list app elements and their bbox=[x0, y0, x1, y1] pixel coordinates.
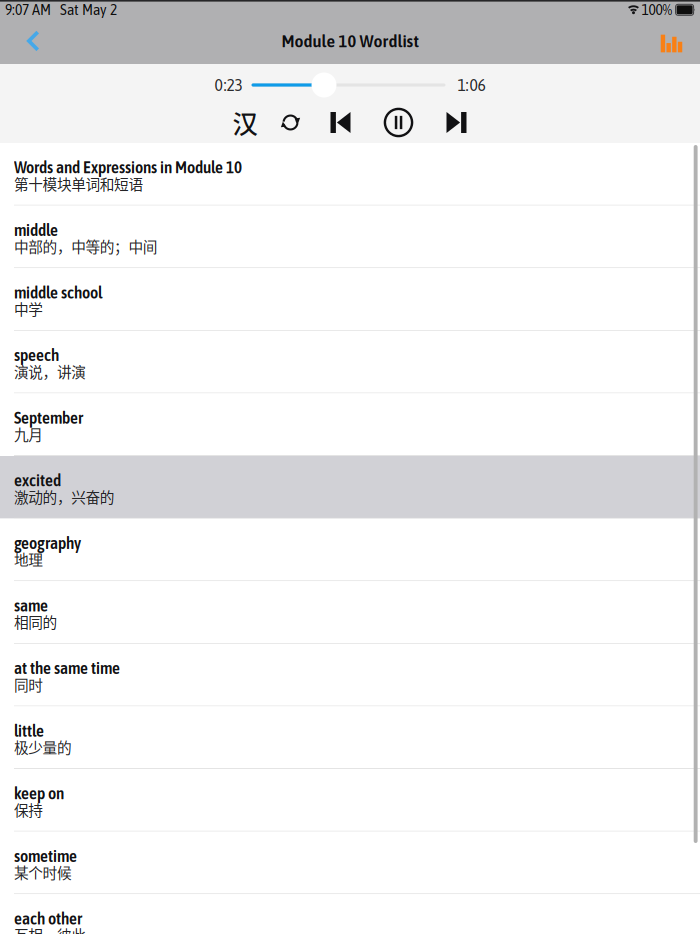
button[interactable]: at the same time bbox=[0, 644, 700, 706]
staticText: 演说，讲演 bbox=[14, 361, 86, 382]
staticText: Sat May 2 bbox=[60, 1, 117, 18]
staticText: little bbox=[14, 722, 44, 740]
button[interactable]: Next track bbox=[429, 106, 484, 138]
button[interactable]: Pause bbox=[368, 106, 429, 138]
staticText: 汉 bbox=[232, 104, 257, 141]
button[interactable]: Repeat bbox=[268, 106, 313, 138]
staticText: same bbox=[14, 596, 48, 615]
staticText: excited bbox=[14, 471, 61, 490]
staticText: Module 10 Wordlist bbox=[281, 31, 418, 51]
staticText: September bbox=[14, 409, 83, 427]
staticText: 相同的 bbox=[14, 611, 58, 632]
staticText: 1:06 bbox=[457, 75, 485, 94]
staticText: 九月 bbox=[14, 423, 43, 444]
button[interactable]: middle school bbox=[0, 268, 700, 331]
staticText: Words and Expressions in Module 10 bbox=[14, 158, 242, 177]
button[interactable]: excited bbox=[0, 456, 700, 519]
staticText: 0:23 bbox=[214, 75, 242, 94]
button[interactable]: little bbox=[0, 706, 700, 769]
staticText: at the same time bbox=[14, 659, 120, 677]
button[interactable]: Statistics bbox=[643, 18, 700, 64]
button[interactable]: Back bbox=[0, 18, 52, 64]
staticText: sometime bbox=[14, 847, 77, 865]
button[interactable]: sometime bbox=[0, 832, 700, 894]
button[interactable]: same bbox=[0, 581, 700, 644]
staticText: keep on bbox=[14, 784, 64, 803]
staticText: 地理 bbox=[14, 548, 43, 570]
staticText: 100% bbox=[642, 1, 673, 18]
staticText: 互相，彼此 bbox=[14, 924, 86, 934]
button[interactable]: keep on bbox=[0, 769, 700, 832]
staticText: middle school bbox=[14, 283, 102, 302]
staticText: 9:07 AM bbox=[5, 1, 51, 18]
staticText: speech bbox=[14, 346, 59, 364]
staticText: 中学 bbox=[14, 298, 43, 319]
staticText: 保持 bbox=[14, 799, 43, 820]
button[interactable]: Previous track bbox=[313, 106, 368, 138]
button[interactable]: speech bbox=[0, 331, 700, 393]
button[interactable]: Words and Expressions in Module 10 bbox=[0, 143, 700, 206]
staticText: 同时 bbox=[14, 674, 43, 695]
staticText: 激动的，兴奋的 bbox=[14, 486, 115, 507]
staticText: 第十模块单词和短语 bbox=[14, 173, 143, 194]
button[interactable]: geography bbox=[0, 519, 700, 581]
button[interactable]: September bbox=[0, 393, 700, 456]
button[interactable]: Show Chinese bbox=[222, 106, 268, 138]
staticText: 中部的，中等的；中间 bbox=[14, 235, 158, 257]
staticText: middle bbox=[14, 221, 58, 239]
staticText: geography bbox=[14, 534, 81, 552]
staticText: each other bbox=[14, 909, 82, 928]
staticText: 极少量的 bbox=[14, 736, 72, 757]
button[interactable]: each other bbox=[0, 894, 700, 934]
button[interactable]: middle bbox=[0, 206, 700, 268]
staticText: 某个时候 bbox=[14, 861, 72, 883]
